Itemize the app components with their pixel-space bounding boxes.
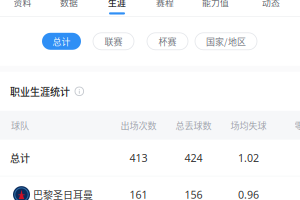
staticText: 球队 — [11, 119, 29, 132]
staticText: 数据 — [60, 0, 78, 9]
staticText: 能力值 — [202, 0, 229, 9]
button[interactable]: 总计 — [0, 140, 300, 176]
button[interactable]: 能力值 — [189, 0, 242, 16]
button[interactable]: 联赛 — [93, 33, 134, 50]
button[interactable]: 赛程 — [141, 0, 189, 16]
staticText: 零封 — [294, 119, 300, 132]
staticText: 联赛 — [104, 35, 122, 48]
button[interactable]: 总计 — [42, 33, 81, 50]
staticText: 职业生涯统计 — [10, 84, 70, 99]
staticText: 总丢球数 — [175, 119, 211, 132]
staticText: 生涯 — [108, 0, 126, 9]
staticText: 413 — [129, 151, 147, 165]
staticText: 0.96 — [238, 187, 259, 200]
staticText: 资料 — [13, 0, 31, 9]
staticText: 161 — [129, 187, 147, 200]
staticText: 总计 — [52, 35, 70, 48]
button[interactable]: 国家/地区 — [195, 33, 257, 50]
button[interactable]: 资料 — [0, 0, 45, 16]
button[interactable]: 动态 — [242, 0, 300, 16]
button[interactable]: 生涯 — [93, 0, 141, 16]
staticText: 国家/地区 — [206, 35, 246, 48]
staticText: 156 — [184, 187, 202, 200]
staticText: 出场次数 — [120, 119, 156, 132]
staticText: 动态 — [262, 0, 280, 9]
staticText: 总计 — [10, 151, 30, 165]
staticText: 场均失球 — [230, 119, 266, 132]
staticText: 赛程 — [156, 0, 174, 9]
button[interactable]: 数据 — [45, 0, 93, 16]
staticText: 巴黎圣日耳曼 — [33, 187, 93, 200]
button[interactable]: 杯赛 — [147, 33, 188, 50]
staticText: 1.02 — [238, 151, 259, 165]
staticText: 424 — [184, 151, 202, 165]
staticText: 杯赛 — [158, 35, 176, 48]
button[interactable]: 巴黎圣日耳曼 — [0, 177, 300, 200]
